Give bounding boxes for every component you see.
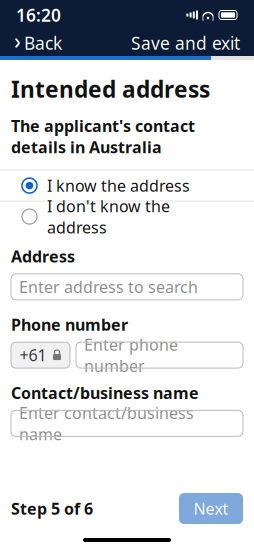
button[interactable]: I know the address bbox=[0, 171, 254, 201]
staticText: Address bbox=[11, 246, 75, 267]
staticText: Enter address to search bbox=[19, 276, 198, 297]
button[interactable]: Next bbox=[179, 493, 243, 524]
staticText: Save and exit bbox=[131, 31, 240, 54]
staticText: Step 5 of 6 bbox=[11, 498, 93, 519]
button[interactable]: Enter address to search bbox=[11, 274, 243, 300]
staticText: Phone number bbox=[11, 314, 128, 335]
button[interactable]: I don't know the address bbox=[0, 202, 254, 232]
staticText: +61 bbox=[19, 344, 46, 366]
staticText: I know the address bbox=[47, 175, 190, 196]
button[interactable]: Back bbox=[10, 27, 66, 58]
button[interactable]: Enter phone number bbox=[76, 342, 243, 368]
staticText: The applicant's contact details in Austr… bbox=[11, 115, 195, 158]
staticText: I don't know the address bbox=[47, 195, 170, 238]
staticText: Contact/business name bbox=[11, 382, 199, 403]
staticText: Enter contact/business name bbox=[19, 402, 194, 445]
button[interactable]: Save and exit bbox=[127, 27, 244, 58]
staticText: Next bbox=[193, 498, 228, 519]
staticText: 16:20 bbox=[16, 3, 61, 26]
button[interactable]: Enter contact/business name bbox=[11, 410, 243, 436]
staticText: Enter phone number bbox=[84, 334, 178, 376]
staticText: Intended address bbox=[11, 74, 210, 104]
staticText: Back bbox=[24, 31, 62, 54]
